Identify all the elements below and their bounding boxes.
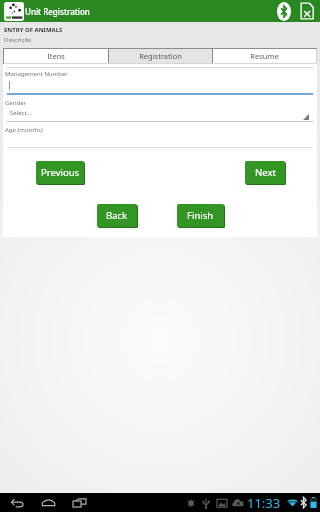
button[interactable]: EcoControl: [4, 2, 24, 21]
button[interactable]: Recent apps: [71, 493, 87, 512]
staticText: Previous: [41, 166, 80, 179]
staticText: Select...: [10, 109, 32, 117]
button[interactable]: Bluetooth: [273, 0, 295, 22]
button[interactable]: Next: [245, 161, 285, 184]
button[interactable]: Export spreadsheet: [296, 0, 318, 22]
staticText: Age (months): [5, 126, 43, 134]
staticText: Gender: [5, 99, 27, 107]
staticText: 11:33: [247, 494, 281, 512]
staticText: Next: [255, 166, 276, 179]
button[interactable]: Resume: [213, 49, 316, 63]
staticText: Descrição: [4, 36, 32, 44]
staticText: Finish: [187, 209, 214, 222]
button[interactable]: Back: [97, 204, 137, 227]
staticText: Registration: [139, 51, 182, 61]
staticText: Resume: [250, 51, 279, 61]
staticText: Unit Registration: [25, 6, 90, 17]
staticText: Back: [106, 209, 128, 222]
button[interactable]: Registration: [109, 49, 212, 63]
staticText: Management Number: [5, 70, 68, 78]
button[interactable]: Finish: [177, 204, 224, 227]
button[interactable]: Itens: [4, 49, 108, 63]
button[interactable]: Home: [40, 493, 56, 512]
staticText: Itens: [47, 51, 65, 61]
button[interactable]: Previous: [36, 161, 84, 184]
button[interactable]: Back: [10, 493, 24, 512]
staticText: ENTRY OF ANIMALS: [4, 26, 63, 34]
